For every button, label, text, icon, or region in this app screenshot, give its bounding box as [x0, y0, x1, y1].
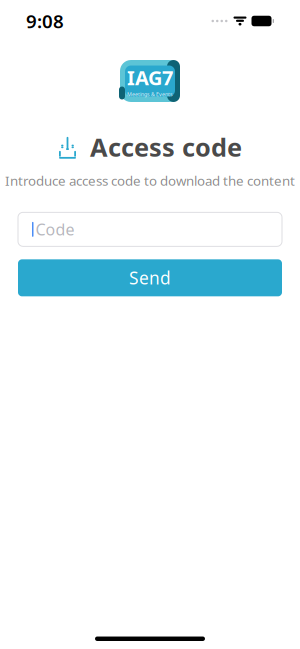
- staticText: 9:08: [26, 9, 64, 33]
- staticText: IAG7: [127, 64, 173, 91]
- staticText: Meetings & Events: [127, 91, 173, 98]
- staticText: Introduce access code to download the co…: [5, 172, 295, 189]
- button[interactable]: Send: [18, 259, 282, 296]
- staticText: Send: [129, 266, 171, 289]
- staticText: Code: [35, 219, 74, 240]
- staticText: Access code: [90, 130, 242, 164]
